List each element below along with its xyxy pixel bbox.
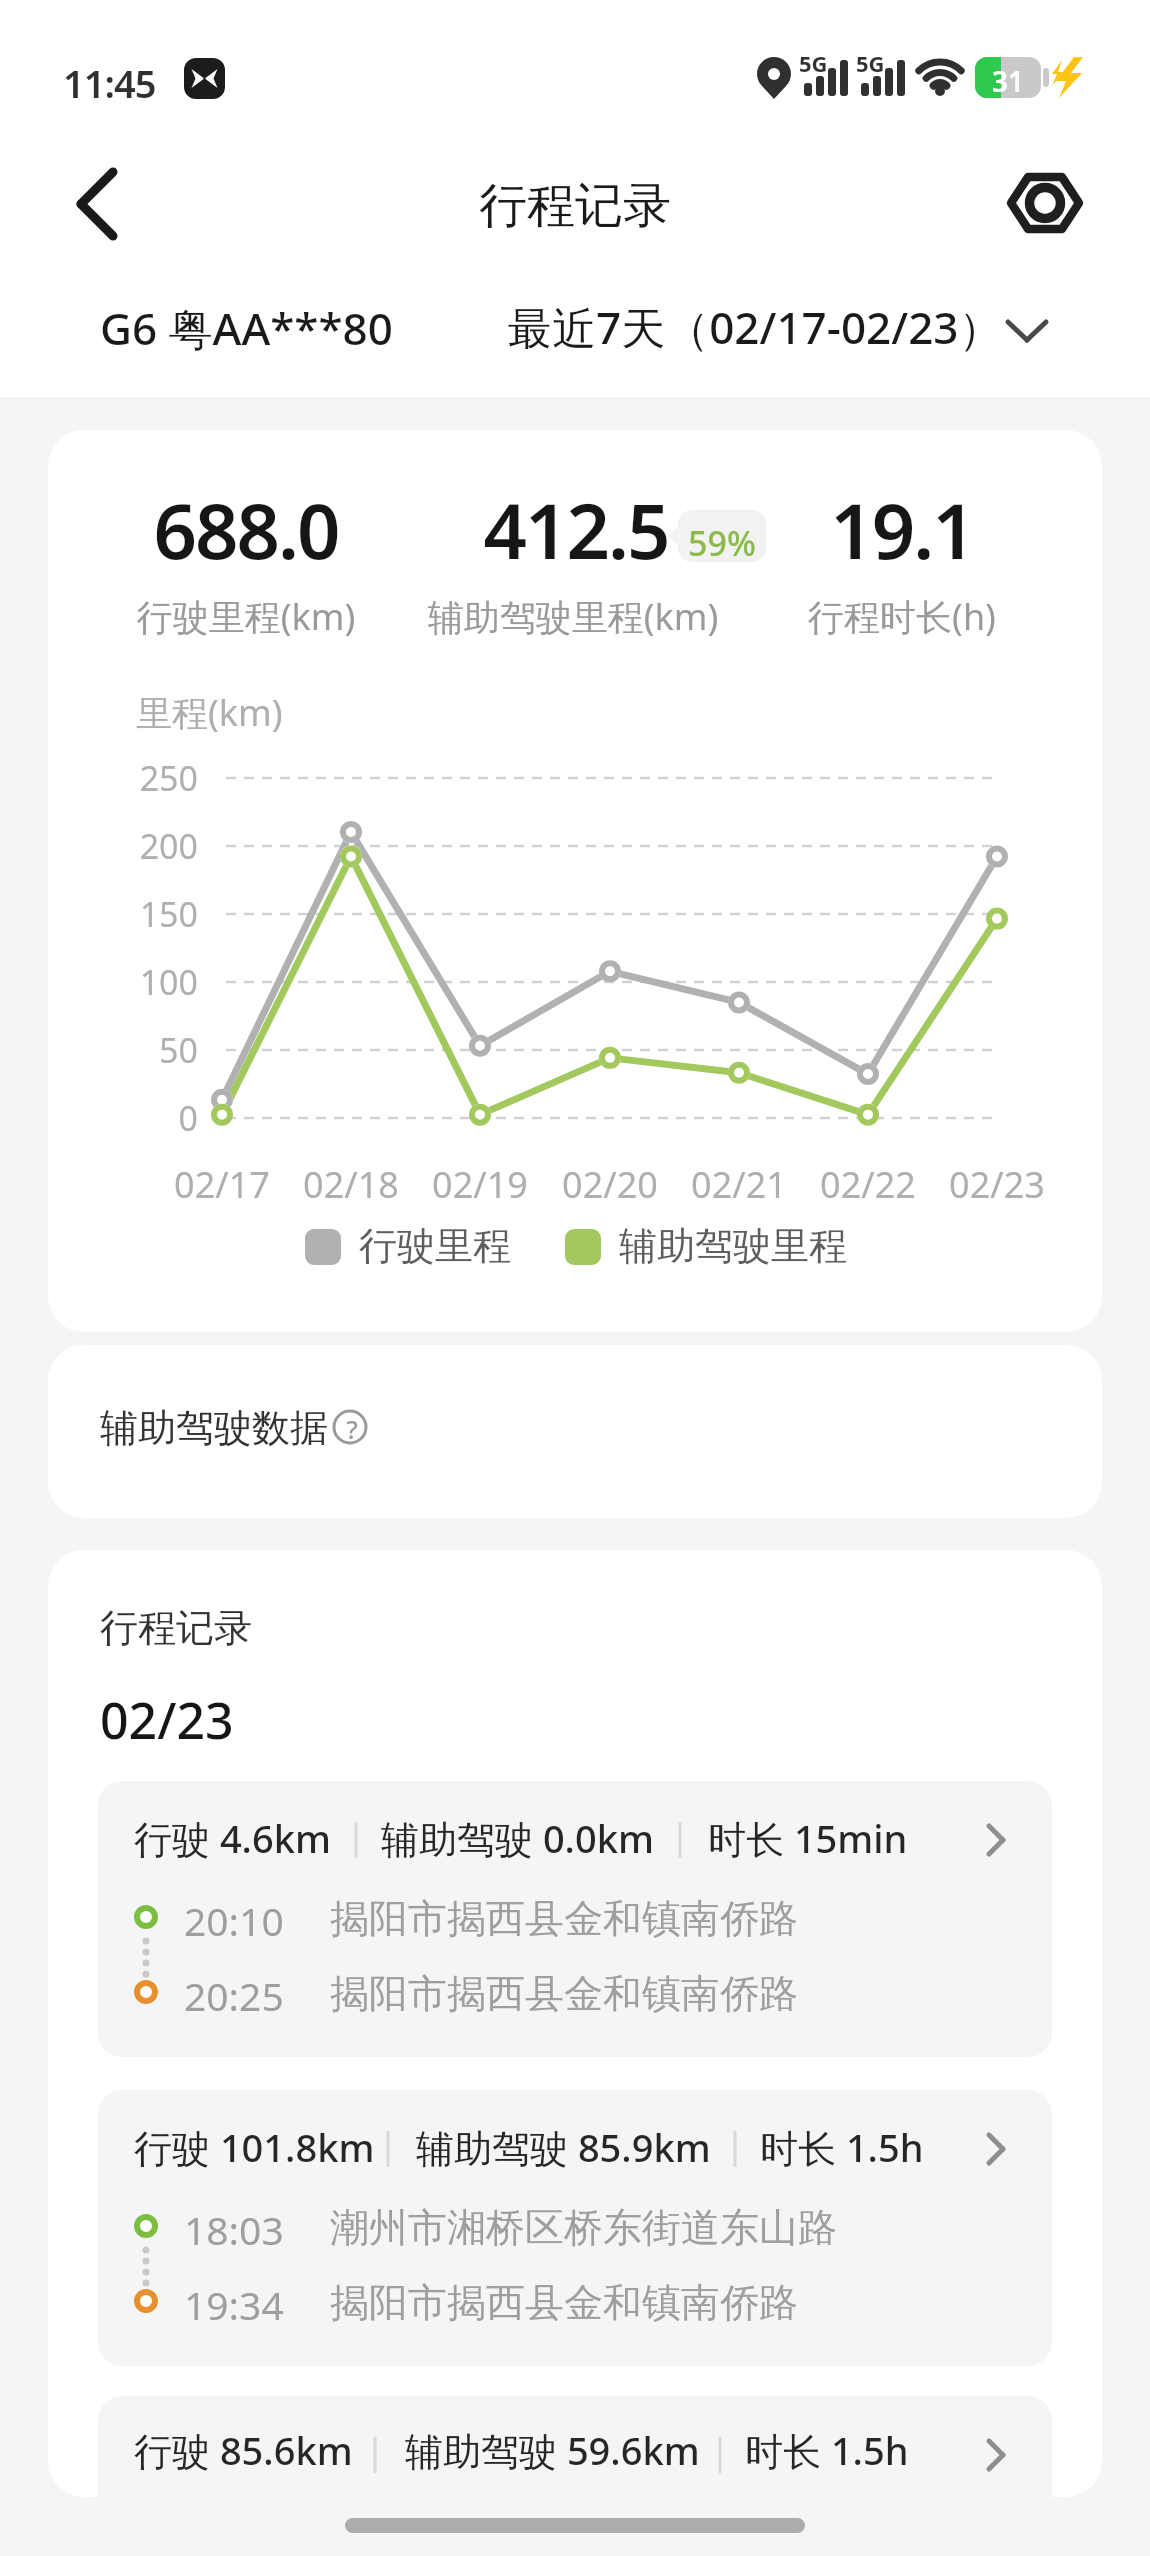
staticText: 辅助驾驶里程 (619, 1222, 847, 1270)
staticText: 11:45 (63, 57, 156, 109)
staticText: 潮州市湘桥区桥东街道东山路 (330, 2203, 837, 2252)
staticText: 行程记录 (0, 176, 1150, 236)
staticText: 02/23 (927, 1160, 1067, 1209)
staticText: 02/21 (669, 1160, 809, 1209)
staticText: 行程时长(h) (752, 592, 1052, 641)
button[interactable] (98, 2090, 1052, 2366)
staticText: 02/19 (410, 1160, 550, 1209)
staticText: 5G (856, 48, 885, 78)
staticText: 20:25 (184, 1969, 284, 2022)
staticText: 0 (78, 1095, 198, 1141)
staticText: 时长 1.5h (760, 2121, 924, 2173)
staticText: 辅助驾驶里程(km) (373, 592, 773, 641)
staticText: 揭阳市揭西县金和镇南侨路 (330, 2278, 798, 2327)
staticText: 里程(km) (136, 688, 283, 737)
staticText: 揭阳市揭西县金和镇南侨路 (330, 1894, 798, 1943)
button[interactable] (98, 2396, 1052, 2497)
staticText: 行驶里程(km) (96, 592, 396, 641)
staticText: 行驶 4.6km (134, 1812, 331, 1864)
staticText: 412.5 (426, 478, 726, 582)
staticText: 200 (78, 823, 198, 869)
staticText: 行驶 85.6km (134, 2424, 353, 2476)
staticText: 时长 15min (708, 1812, 908, 1864)
staticText: 31 (975, 62, 1041, 100)
button[interactable] (60, 160, 150, 250)
staticText: 59% (678, 520, 766, 566)
staticText: 最近7天（02/17-02/23） (508, 297, 1003, 357)
staticText: G6 粤AA***80 (100, 298, 393, 358)
staticText: 02/22 (798, 1160, 938, 1209)
staticText: 02/17 (152, 1160, 292, 1209)
staticText: ? (338, 1411, 366, 1446)
button[interactable] (500, 290, 1060, 370)
staticText: 行驶 101.8km (134, 2121, 375, 2173)
staticText: 辅助驾驶 59.6km (405, 2424, 700, 2476)
staticText: 5G (799, 48, 828, 78)
staticText: 20:10 (184, 1894, 284, 1947)
staticText: 18:03 (184, 2203, 284, 2256)
staticText: 100 (78, 959, 198, 1005)
staticText: 时长 1.5h (745, 2424, 909, 2476)
staticText: 688.0 (96, 478, 396, 582)
button[interactable] (1000, 158, 1090, 248)
button[interactable] (98, 1781, 1052, 2057)
staticText: 50 (78, 1027, 198, 1073)
staticText: 19.1 (752, 478, 1052, 582)
staticText: 辅助驾驶 85.9km (416, 2121, 711, 2173)
staticText: 辅助驾驶数据 (100, 1404, 328, 1452)
staticText: 02/18 (281, 1160, 421, 1209)
staticText: 辅助驾驶 0.0km (381, 1812, 654, 1864)
staticText: 19:34 (184, 2278, 284, 2331)
staticText: 02/20 (540, 1160, 680, 1209)
staticText: 行程记录 (100, 1604, 252, 1652)
staticText: 揭阳市揭西县金和镇南侨路 (330, 1969, 798, 2018)
staticText: 150 (78, 891, 198, 937)
staticText: 250 (78, 755, 198, 801)
button[interactable] (48, 1345, 1102, 1518)
staticText: 行驶里程 (359, 1222, 511, 1270)
staticText: 02/23 (100, 1686, 234, 1754)
